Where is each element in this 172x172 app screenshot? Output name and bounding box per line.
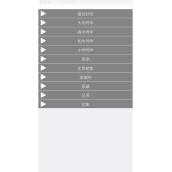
button[interactable]: 交集: [38, 100, 132, 108]
button[interactable]: 最近好友: [38, 9, 132, 18]
staticText: 交集: [81, 102, 89, 107]
button[interactable]: 初中同学: [38, 36, 132, 45]
staticText: 追债的: [79, 75, 91, 80]
staticText: 初中同学: [77, 39, 93, 44]
button[interactable]: 追债的: [38, 73, 132, 81]
staticText: iOS Simulator - iPhone 6 - iPhone 6 / iO…: [60, 0, 124, 4]
button[interactable]: 小学同学: [38, 45, 132, 54]
button[interactable]: 高中同学: [38, 27, 132, 36]
staticText: 最近好友: [77, 11, 93, 16]
staticText: 老乡: [81, 57, 89, 62]
staticText: 亲戚: [81, 84, 89, 89]
staticText: 大学同学: [77, 21, 93, 25]
button[interactable]: 大学同学: [38, 18, 132, 27]
button[interactable]: 父亲: [38, 91, 132, 99]
staticText: 文章销售: [77, 66, 93, 71]
staticText: 父亲: [81, 93, 89, 98]
staticText: 高中同学: [77, 30, 93, 34]
button[interactable]: 亲戚: [38, 82, 132, 90]
button[interactable]: 老乡: [38, 55, 132, 63]
button[interactable]: 文章销售: [38, 64, 132, 72]
staticText: 小学同学: [77, 48, 93, 53]
